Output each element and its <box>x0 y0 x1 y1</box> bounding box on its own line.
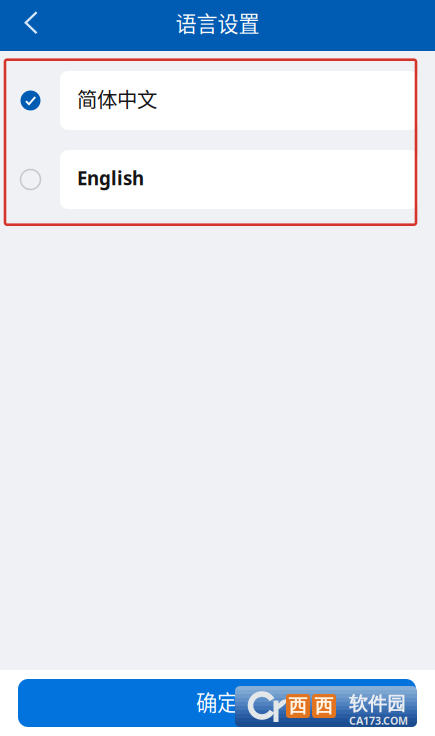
staticText: 确定 <box>196 686 238 717</box>
button[interactable]: Back <box>5 0 57 45</box>
staticText: 语言设置 <box>175 7 259 38</box>
staticText: 简体中文 <box>77 84 157 113</box>
button[interactable]: 简体中文 <box>0 71 435 130</box>
staticText: 软件园 <box>349 692 406 715</box>
staticText: 西 <box>314 694 333 718</box>
button[interactable]: 确定 <box>18 679 416 727</box>
button[interactable]: English <box>0 150 435 209</box>
staticText: English <box>77 166 144 190</box>
staticText: CA173.COM <box>349 713 408 728</box>
staticText: 西 <box>288 694 307 718</box>
